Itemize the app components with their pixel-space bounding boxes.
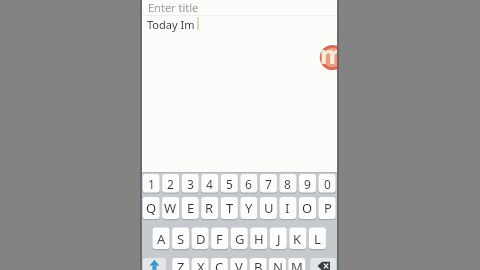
staticText: O bbox=[302, 199, 313, 217]
staticText: F bbox=[216, 230, 223, 248]
staticText: J bbox=[277, 230, 281, 248]
staticText: Q bbox=[146, 199, 157, 217]
staticText: Y bbox=[245, 199, 253, 217]
staticText: E bbox=[187, 199, 195, 217]
staticText: M bbox=[291, 258, 303, 270]
staticText: T bbox=[226, 199, 234, 217]
staticText: R bbox=[205, 199, 214, 217]
staticText: H bbox=[254, 230, 264, 248]
staticText: X bbox=[197, 258, 205, 270]
staticText: 5 bbox=[226, 176, 233, 192]
staticText: 3 bbox=[187, 176, 194, 192]
staticText: I bbox=[285, 199, 290, 217]
staticText: Enter title bbox=[148, 0, 199, 15]
staticText: Today Im bbox=[147, 17, 195, 32]
staticText: 7 bbox=[265, 176, 272, 192]
staticText: 6 bbox=[245, 176, 252, 192]
staticText: L bbox=[314, 230, 321, 248]
staticText: 9 bbox=[304, 176, 311, 192]
staticText: 0 bbox=[324, 176, 331, 192]
staticText: 1 bbox=[148, 176, 155, 192]
staticText: m bbox=[320, 37, 337, 65]
staticText: D bbox=[196, 230, 206, 248]
staticText: G bbox=[235, 230, 245, 248]
staticText: P bbox=[324, 199, 332, 217]
staticText: Z bbox=[177, 258, 185, 270]
staticText: V bbox=[235, 258, 243, 270]
staticText: 2 bbox=[167, 176, 174, 192]
staticText: 8 bbox=[284, 176, 291, 192]
staticText: W bbox=[164, 199, 177, 217]
staticText: N bbox=[273, 258, 283, 270]
staticText: 4 bbox=[206, 176, 213, 192]
staticText: S bbox=[177, 230, 185, 248]
staticText: K bbox=[293, 230, 302, 248]
staticText: A bbox=[157, 230, 166, 248]
staticText: B bbox=[254, 258, 263, 270]
staticText: U bbox=[264, 199, 274, 217]
staticText: C bbox=[215, 258, 224, 270]
